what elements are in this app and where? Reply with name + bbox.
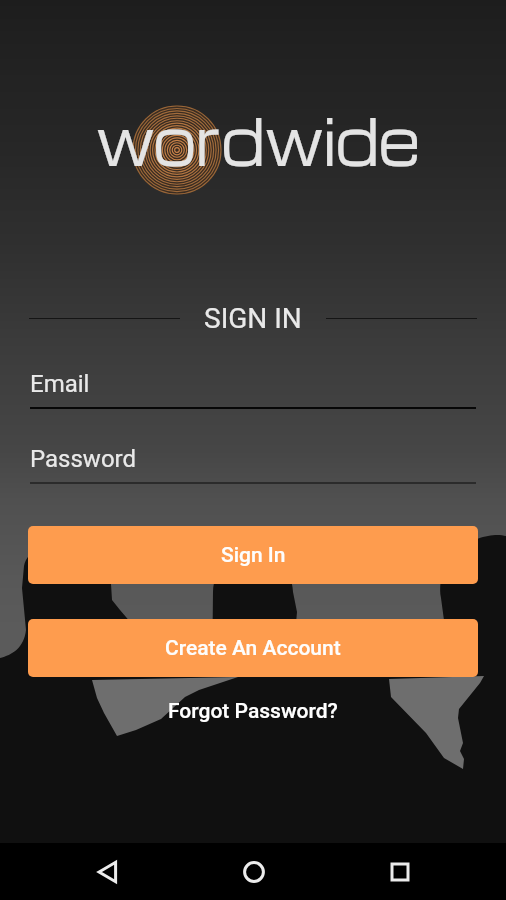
staticText: Email — [30, 370, 90, 398]
button[interactable]: Recent apps — [372, 844, 428, 900]
button[interactable]: Back — [81, 844, 137, 900]
staticText: Create An Account — [165, 636, 341, 661]
staticText: Password — [30, 445, 137, 473]
staticText: wordwide — [96, 92, 421, 184]
button[interactable]: Create An Account — [28, 619, 478, 677]
button[interactable]: Forgot Password? — [156, 692, 350, 731]
staticText: Forgot Password? — [168, 699, 338, 724]
button[interactable]: Home — [226, 844, 282, 900]
button[interactable]: Sign In — [28, 526, 478, 584]
staticText: Sign In — [221, 543, 286, 568]
staticText: SIGN IN — [204, 302, 302, 334]
